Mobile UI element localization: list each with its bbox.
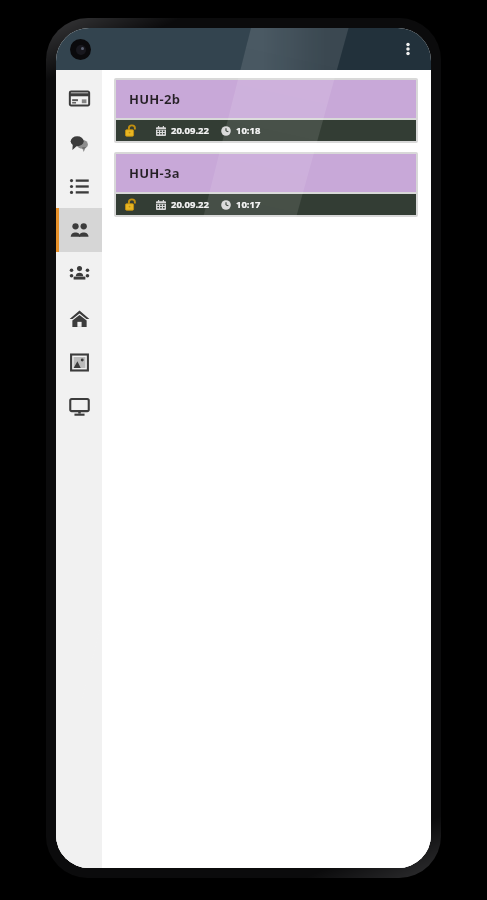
button[interactable]: Gallery bbox=[56, 340, 102, 384]
button[interactable]: More options bbox=[391, 32, 425, 66]
staticText: 20.09.22 bbox=[171, 198, 209, 211]
staticText: 20.09.22 bbox=[171, 124, 209, 137]
button[interactable]: Cards bbox=[56, 76, 102, 120]
staticText: HUH-2b bbox=[129, 90, 181, 108]
staticText: HUH-3a bbox=[129, 164, 180, 182]
button[interactable]: Home bbox=[56, 296, 102, 340]
staticText: 10:18 bbox=[236, 124, 261, 137]
staticText: 10:17 bbox=[236, 198, 261, 211]
button[interactable]: List bbox=[56, 164, 102, 208]
button[interactable]: Display bbox=[56, 384, 102, 428]
button[interactable]: People bbox=[56, 208, 102, 252]
button[interactable]: HUH-3a bbox=[116, 154, 416, 215]
button[interactable]: HUH-2b bbox=[116, 80, 416, 141]
button[interactable]: Meeting bbox=[56, 252, 102, 296]
button[interactable]: Messages bbox=[56, 120, 102, 164]
